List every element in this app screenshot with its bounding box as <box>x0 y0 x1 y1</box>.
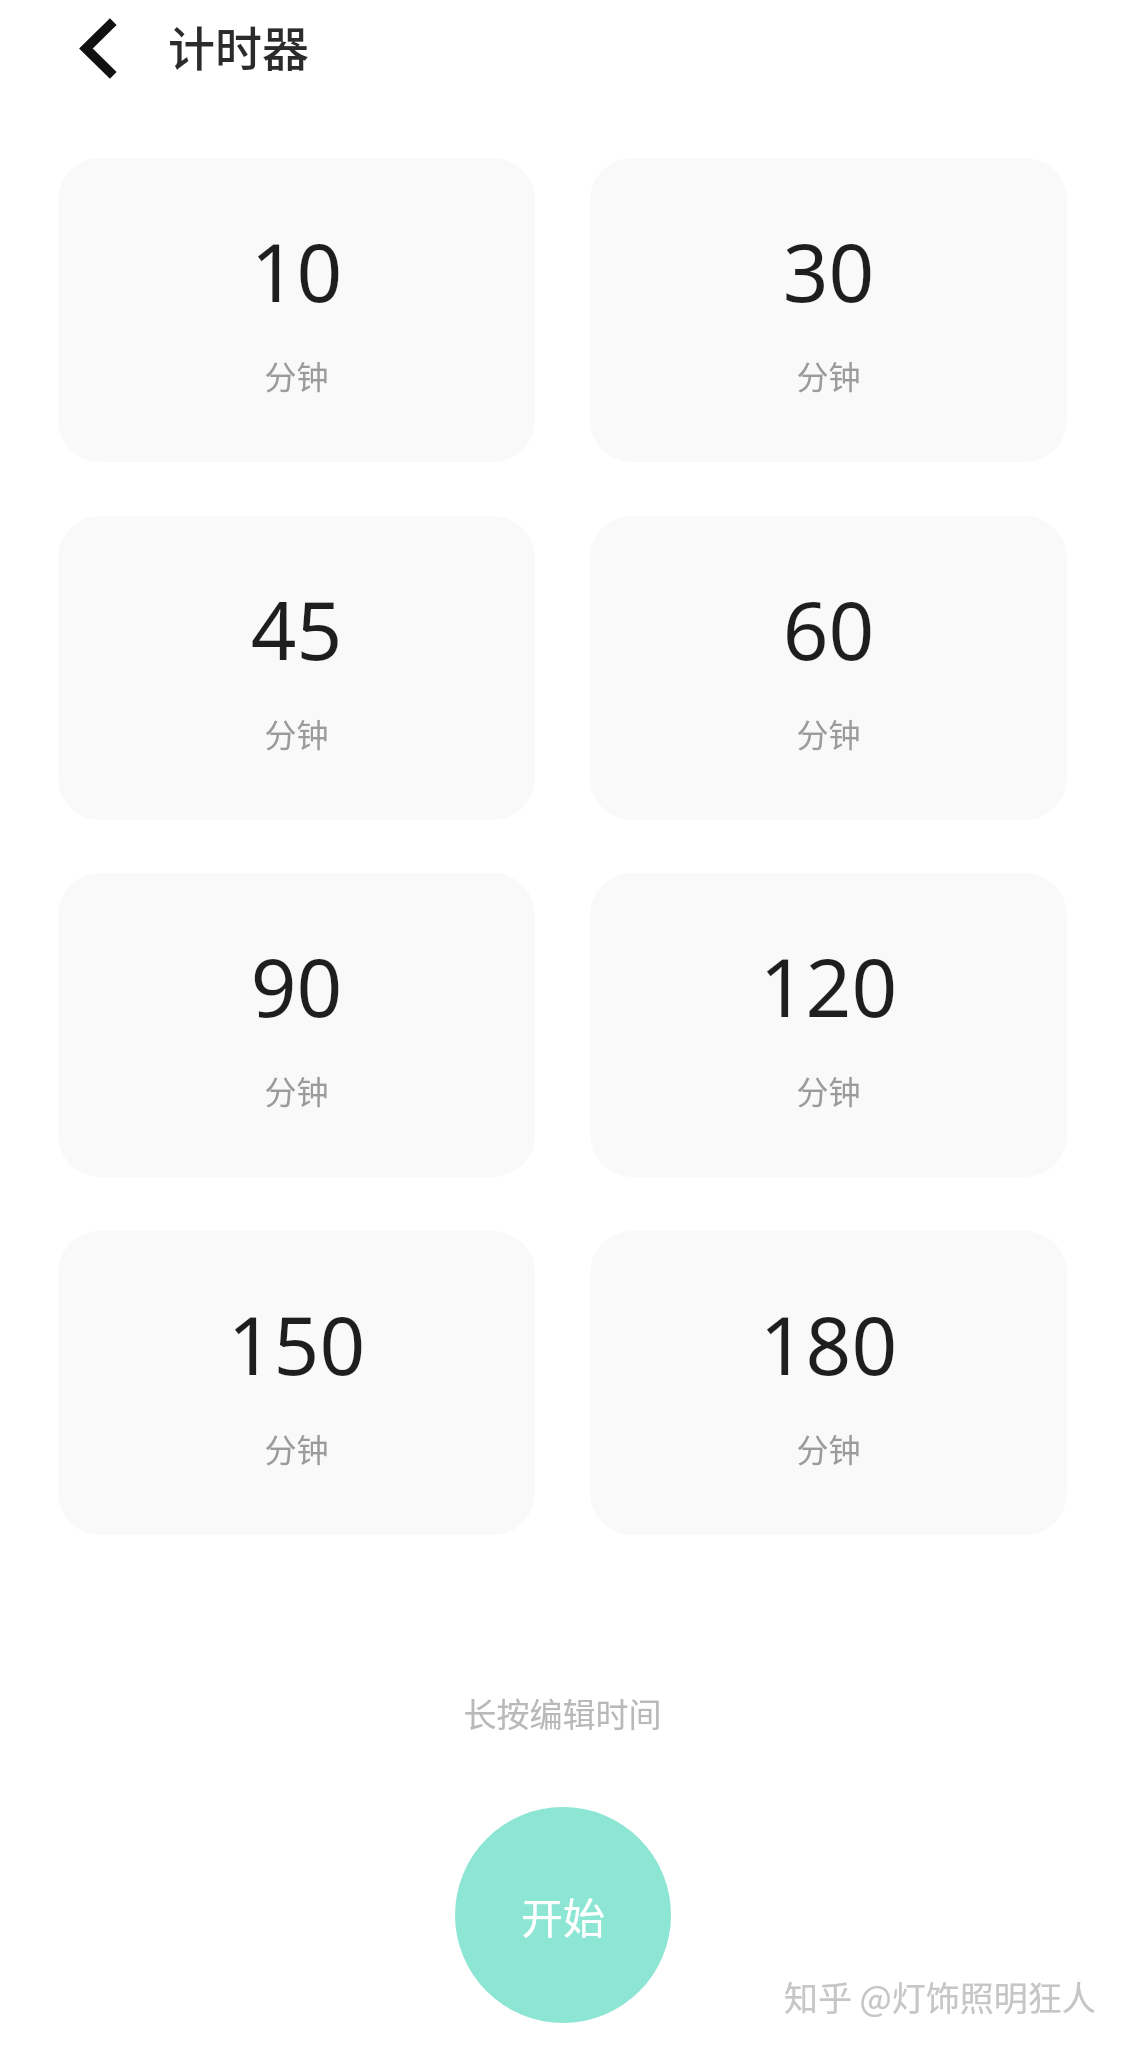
staticText: 10 <box>58 216 535 325</box>
button[interactable]: 150 <box>58 1231 535 1535</box>
staticText: 知乎 @灯饰照明狂人 <box>784 1972 1096 2021</box>
staticText: 分钟 <box>58 1067 535 1113</box>
staticText: 分钟 <box>590 352 1067 398</box>
button[interactable]: Back <box>59 8 139 88</box>
button[interactable]: 90 <box>58 873 535 1177</box>
staticText: 分钟 <box>58 1425 535 1471</box>
staticText: 计时器 <box>168 11 309 79</box>
staticText: 150 <box>58 1289 535 1398</box>
staticText: 30 <box>590 216 1067 325</box>
staticText: 开始 <box>521 1885 606 1946</box>
staticText: 分钟 <box>590 1425 1067 1471</box>
staticText: 90 <box>58 931 535 1040</box>
staticText: 120 <box>590 931 1067 1040</box>
button[interactable]: 60 <box>590 516 1067 820</box>
staticText: 60 <box>590 574 1067 683</box>
button[interactable]: 45 <box>58 516 535 820</box>
button[interactable]: 开始 <box>455 1807 671 2023</box>
button[interactable]: 120 <box>590 873 1067 1177</box>
staticText: 180 <box>590 1289 1067 1398</box>
staticText: 长按编辑时间 <box>0 1689 1125 1737</box>
staticText: 分钟 <box>58 352 535 398</box>
staticText: 45 <box>58 574 535 683</box>
staticText: 分钟 <box>590 710 1067 756</box>
button[interactable]: 10 <box>58 158 535 462</box>
staticText: 分钟 <box>58 710 535 756</box>
staticText: 分钟 <box>590 1067 1067 1113</box>
button[interactable]: 180 <box>590 1231 1067 1535</box>
button[interactable]: 30 <box>590 158 1067 462</box>
